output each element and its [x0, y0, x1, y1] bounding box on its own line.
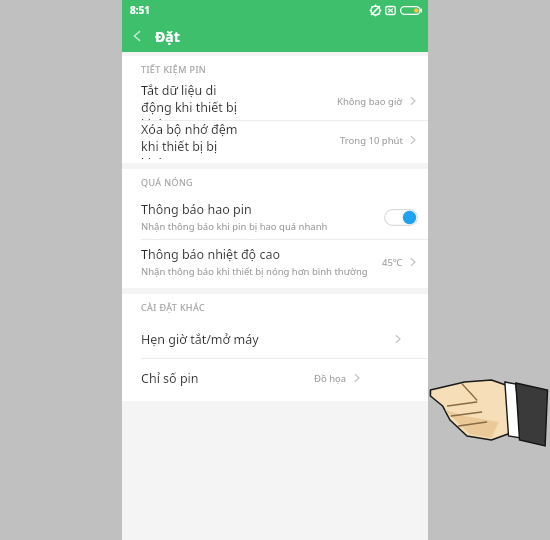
button[interactable]: Back — [122, 21, 152, 51]
staticText: 8:51 — [130, 3, 150, 17]
staticText: Đồ họa — [314, 372, 347, 385]
button[interactable]: Chỉ số pin — [122, 359, 428, 397]
button[interactable]: Hẹn giờ tắt/mở máy — [122, 320, 428, 358]
staticText: Đặt — [155, 27, 180, 46]
button[interactable]: Thông báo hao pin — [122, 195, 428, 239]
staticText: Xóa bộ nhớ đệm khi thiết bị bị khóa — [141, 121, 240, 159]
staticText: CÀI ĐẶT KHÁC — [141, 301, 205, 313]
staticText: Tắt dữ liệu di động khi thiết bị khóa — [141, 82, 239, 120]
staticText: Thông báo hao pin — [141, 201, 252, 218]
staticText: TIẾT KIỆM PIN — [141, 63, 207, 75]
button[interactable]: Xóa bộ nhớ đệm khi thiết bị bị khóa — [122, 121, 428, 159]
staticText: 45℃ — [382, 256, 403, 269]
staticText: Trong 10 phút — [340, 134, 403, 147]
staticText: Hẹn giờ tắt/mở máy — [141, 331, 259, 348]
staticText: Chỉ số pin — [141, 370, 199, 387]
staticText: Nhận thông báo khi thiết bị nóng hơn bìn… — [141, 265, 368, 278]
staticText: Không bao giờ — [337, 95, 403, 108]
staticText: QUÁ NÓNG — [141, 176, 194, 188]
button[interactable]: Toggle battery drain notification — [384, 209, 418, 226]
button[interactable]: Thông báo nhiệt độ cao — [122, 240, 428, 284]
staticText: Thông báo nhiệt độ cao — [141, 246, 281, 263]
button[interactable]: Tắt dữ liệu di động khi thiết bị khóa — [122, 82, 428, 120]
staticText: Nhận thông báo khi pin bị hao quá nhanh — [141, 220, 328, 233]
